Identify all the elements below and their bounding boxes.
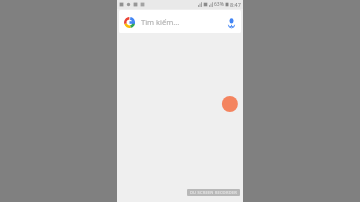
staticText: DU SCREEN RECORDER bbox=[190, 190, 237, 195]
button[interactable]: Tìm kiếm... bbox=[119, 10, 241, 33]
staticText: 63% bbox=[214, 1, 224, 8]
staticText: 8:47 bbox=[230, 1, 241, 8]
button[interactable]: Floating assistant bbox=[227, 96, 243, 112]
button[interactable]: Voice search bbox=[225, 16, 237, 28]
staticText: Tìm kiếm... bbox=[141, 17, 225, 27]
